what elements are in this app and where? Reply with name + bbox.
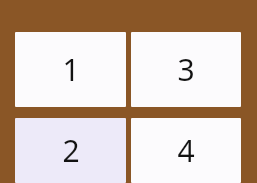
button[interactable]: 1 [15,32,126,107]
button[interactable]: 2 [15,118,126,183]
button[interactable]: 3 [131,32,241,107]
staticText: 3 [177,49,195,90]
button[interactable]: 4 [131,118,241,183]
staticText: 2 [62,130,80,171]
staticText: 4 [177,130,195,171]
staticText: 1 [62,49,80,90]
